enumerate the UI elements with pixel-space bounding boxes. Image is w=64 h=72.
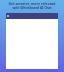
staticText: with Whiteboard AI Chat	[12, 6, 52, 10]
staticText: Get smarter, more relevant	[8, 1, 56, 6]
